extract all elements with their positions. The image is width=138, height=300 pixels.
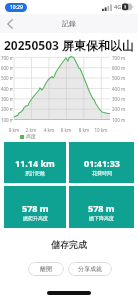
- button[interactable]: 分享成就: [68, 262, 112, 276]
- button[interactable]: 01:41:33: [69, 142, 134, 183]
- staticText: 花費時間: [92, 170, 112, 176]
- button[interactable]: 離開: [28, 262, 64, 276]
- staticText: 100 m: [0, 117, 13, 123]
- staticText: 6 km: [58, 127, 74, 133]
- staticText: 400 m: [112, 86, 126, 92]
- staticText: 記錄: [62, 19, 76, 28]
- button[interactable]: 11.14 km: [4, 142, 66, 183]
- staticText: 0 km: [6, 127, 22, 133]
- staticText: 500 m: [112, 75, 126, 81]
- staticText: 700 m: [112, 55, 126, 61]
- staticText: 300 m: [112, 96, 126, 102]
- staticText: 100 m: [112, 117, 126, 123]
- staticText: 10:29: [10, 4, 23, 11]
- staticText: 300 m: [0, 96, 13, 102]
- staticText: 600 m: [112, 65, 126, 71]
- staticText: 20250503 屏東保和以山: [4, 37, 135, 53]
- staticText: 高度: [26, 133, 36, 139]
- button[interactable]: 578 m: [4, 186, 66, 228]
- staticText: 8 km: [76, 127, 92, 133]
- button[interactable]: 578 m: [69, 186, 134, 228]
- staticText: 10 km: [93, 127, 109, 133]
- staticText: 600 m: [0, 65, 13, 71]
- staticText: 400 m: [0, 86, 13, 92]
- staticText: 11.14 km: [15, 157, 55, 169]
- staticText: 4G: [114, 3, 122, 10]
- staticText: 4 km: [41, 127, 57, 133]
- staticText: 01:41:33: [84, 157, 120, 169]
- staticText: 2 km: [23, 127, 39, 133]
- staticText: 578 m: [88, 202, 115, 214]
- staticText: 700 m: [0, 55, 13, 61]
- staticText: 200 m: [0, 106, 13, 112]
- staticText: 200 m: [112, 106, 126, 112]
- button[interactable]: [0, 14, 20, 33]
- staticText: 離開: [40, 265, 52, 273]
- staticText: 500 m: [0, 75, 13, 81]
- staticText: 578 m: [22, 202, 49, 214]
- staticText: 分享成就: [78, 265, 102, 273]
- staticText: 總爬升高度: [23, 215, 48, 221]
- staticText: 儲存完成: [0, 239, 138, 250]
- staticText: 累計距離: [25, 170, 45, 176]
- staticText: 總下降高度: [89, 215, 114, 221]
